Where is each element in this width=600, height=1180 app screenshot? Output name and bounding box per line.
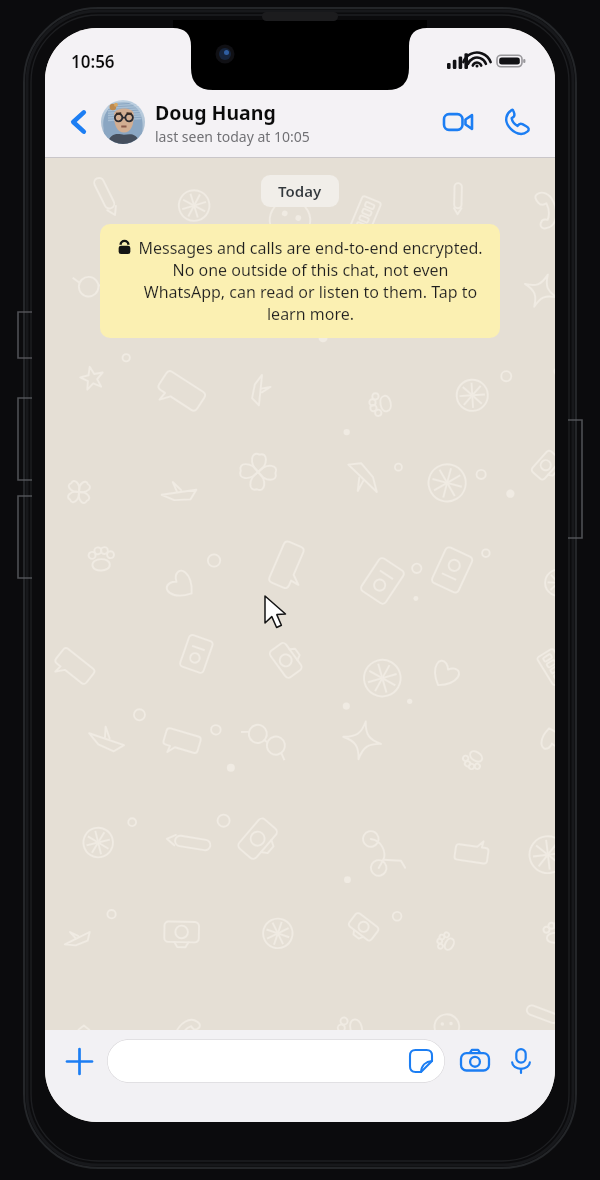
button[interactable]: Today — [261, 175, 339, 207]
button[interactable]: Back — [57, 100, 101, 144]
button[interactable]: Stickers — [107, 1039, 445, 1083]
button[interactable]: Video call — [435, 99, 481, 145]
button[interactable]: Doug Huang — [155, 99, 435, 146]
button[interactable]: Voice message — [499, 1039, 543, 1083]
button[interactable]: Voice call — [493, 99, 539, 145]
button[interactable]: Contact photo — [101, 100, 145, 144]
button[interactable]: Camera — [453, 1039, 497, 1083]
staticText: Today — [278, 181, 322, 201]
button[interactable]: Attach — [57, 1039, 101, 1083]
staticText: Doug Huang — [155, 99, 276, 126]
staticText: last seen today at 10:05 — [155, 127, 310, 146]
button[interactable]: Stickers — [406, 1046, 436, 1076]
button[interactable]: Messages and calls are end-to-end encryp… — [100, 224, 500, 338]
staticText: Messages and calls are end-to-end encryp… — [138, 237, 483, 325]
staticText: 10:56 — [71, 50, 115, 73]
